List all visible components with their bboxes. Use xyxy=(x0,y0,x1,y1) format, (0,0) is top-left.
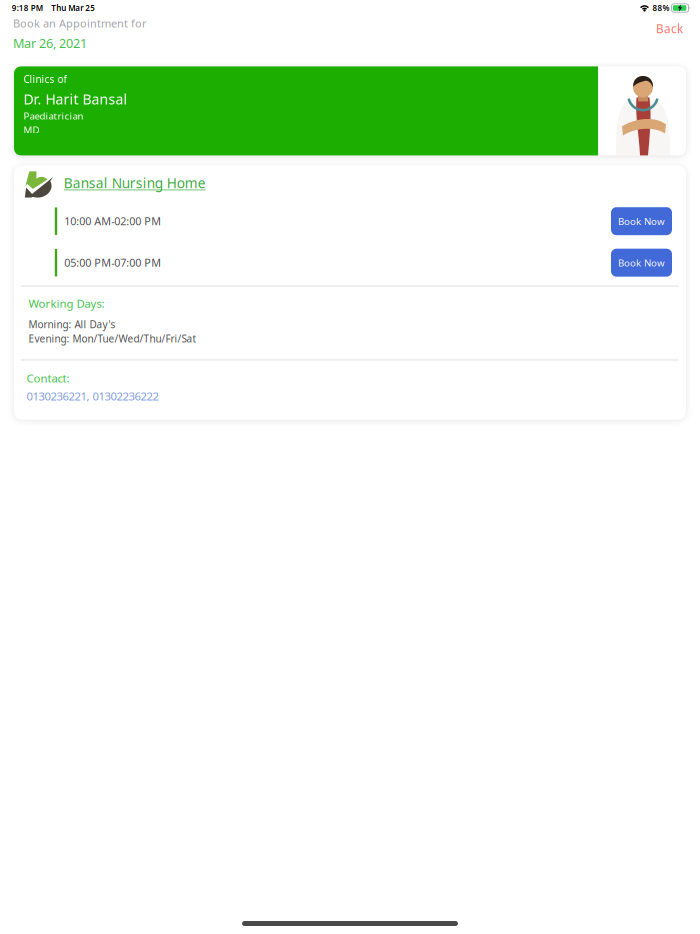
staticText: Bansal Nursing Home xyxy=(64,174,206,192)
staticText: 05:00 PM-07:00 PM xyxy=(64,255,161,270)
button[interactable]: 0130236221, 01302236222 xyxy=(26,389,158,404)
staticText: Clinics of xyxy=(23,72,66,86)
staticText: Contact: xyxy=(26,371,69,386)
staticText: 9:18 PM xyxy=(12,3,43,13)
staticText: 0130236221, 01302236222 xyxy=(26,389,158,404)
staticText: Morning: All Day's xyxy=(28,318,115,331)
button[interactable]: Book Now xyxy=(611,249,672,277)
button[interactable]: Book Now xyxy=(611,207,672,235)
staticText: Paediatrician xyxy=(23,109,83,122)
staticText: Dr. Harit Bansal xyxy=(23,90,127,108)
staticText: Book an Appointment for xyxy=(13,16,147,31)
staticText: Book Now xyxy=(618,256,665,269)
staticText: Book Now xyxy=(618,215,665,228)
staticText: 88% xyxy=(652,3,669,13)
staticText: 10:00 AM-02:00 PM xyxy=(64,214,161,228)
staticText: Evening: Mon/Tue/Wed/Thu/Fri/Sat xyxy=(28,332,196,345)
button[interactable]: Bansal Nursing Home xyxy=(52,170,206,196)
staticText: Working Days: xyxy=(28,296,104,311)
staticText: Back xyxy=(656,21,683,36)
staticText: Mar 26, 2021 xyxy=(13,35,87,51)
staticText: Thu Mar 25 xyxy=(51,3,95,13)
button[interactable]: Back xyxy=(652,16,687,36)
staticText: MD xyxy=(23,123,39,136)
